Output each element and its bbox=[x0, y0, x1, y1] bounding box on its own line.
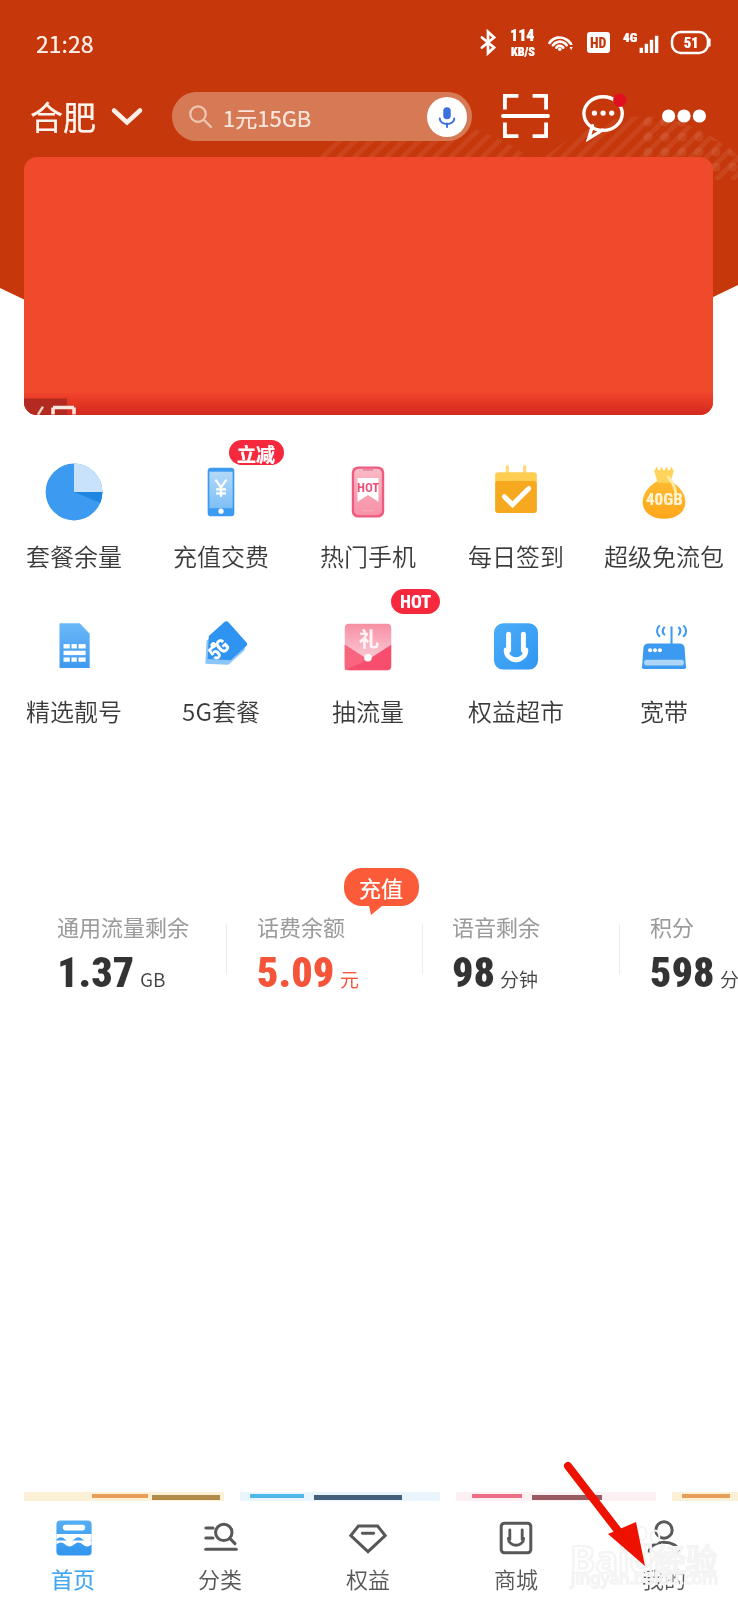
staticText: 充值 bbox=[359, 871, 404, 903]
staticText: KB/S bbox=[511, 45, 535, 59]
staticText: 分 bbox=[720, 965, 738, 993]
button[interactable]: 积分 bbox=[650, 910, 738, 997]
staticText: 套餐余量 bbox=[26, 538, 122, 573]
staticText: Baidu bbox=[570, 1532, 679, 1584]
button[interactable]: 礼 bbox=[294, 617, 442, 728]
staticText: 充值交费 bbox=[173, 538, 269, 573]
staticText: 合肥 bbox=[30, 92, 96, 140]
staticText: 宽带 bbox=[640, 693, 688, 728]
button[interactable]: 消息 bbox=[580, 91, 630, 141]
staticText: 话费余额 bbox=[257, 910, 346, 942]
button[interactable]: 语音剩余 bbox=[452, 910, 620, 997]
staticText: HOT bbox=[400, 591, 431, 612]
button[interactable]: 权益 bbox=[294, 1518, 442, 1594]
staticText: 语音剩余 bbox=[452, 910, 541, 942]
button[interactable]: 合肥 bbox=[30, 92, 140, 140]
button[interactable]: 我的 bbox=[590, 1518, 738, 1594]
staticText: 分类 bbox=[198, 1562, 243, 1594]
staticText: 598 bbox=[650, 948, 715, 997]
staticText: 商城 bbox=[494, 1562, 539, 1594]
button[interactable]: 每日签到 bbox=[442, 462, 590, 573]
staticText: 权益超市 bbox=[468, 693, 564, 728]
button[interactable]: 商城 bbox=[442, 1518, 590, 1594]
staticText: 我的 bbox=[642, 1562, 687, 1594]
staticText: 通用流量剩余 bbox=[57, 910, 190, 942]
button[interactable]: 首页 bbox=[0, 1518, 147, 1594]
button[interactable]: 通用流量剩余 bbox=[57, 910, 227, 997]
button[interactable]: HOT bbox=[294, 462, 442, 573]
staticText: 精选靓号 bbox=[26, 693, 122, 728]
staticText: 立减 bbox=[237, 440, 276, 465]
staticText: 1.37 bbox=[57, 948, 135, 997]
button[interactable]: 立减 bbox=[147, 462, 294, 573]
staticText: 5.09 bbox=[257, 948, 335, 997]
staticText: 热门手机 bbox=[320, 538, 416, 573]
staticText: 5G bbox=[203, 634, 234, 664]
staticText: 分钟 bbox=[500, 965, 539, 993]
staticText: 114 bbox=[510, 26, 535, 45]
staticText: 经验 bbox=[655, 1535, 717, 1580]
staticText: 超级免流包 bbox=[604, 538, 724, 573]
staticText: jingyan.baidu.com bbox=[571, 1566, 719, 1589]
staticText: 积分 bbox=[650, 910, 695, 942]
staticText: 40GB bbox=[646, 489, 683, 509]
button[interactable]: 宽带 bbox=[590, 617, 738, 728]
staticText: 51 bbox=[684, 35, 699, 51]
button[interactable]: 精选靓号 bbox=[0, 617, 147, 728]
button[interactable]: 1元15GB bbox=[172, 92, 472, 141]
staticText: GB bbox=[140, 965, 166, 993]
staticText: 首页 bbox=[51, 1562, 96, 1594]
staticText: 元 bbox=[340, 965, 360, 993]
button[interactable]: 充值 bbox=[344, 868, 419, 906]
button[interactable]: 更多 bbox=[652, 91, 716, 141]
button[interactable]: 套餐余量 bbox=[0, 462, 147, 573]
button[interactable]: 扫一扫 bbox=[501, 92, 549, 140]
staticText: 5G套餐 bbox=[182, 693, 260, 728]
staticText: 4G bbox=[623, 30, 638, 45]
button[interactable]: 话费余额 bbox=[257, 910, 423, 997]
staticText: 98 bbox=[452, 948, 495, 997]
staticText: 抽流量 bbox=[332, 693, 404, 728]
button[interactable]: 40GB bbox=[590, 462, 738, 573]
staticText: HOT bbox=[357, 480, 380, 495]
staticText: 礼 bbox=[359, 624, 379, 653]
button[interactable] bbox=[24, 157, 713, 415]
button[interactable]: 分类 bbox=[147, 1518, 294, 1594]
staticText: 权益 bbox=[346, 1562, 391, 1594]
staticText: 21:28 bbox=[36, 26, 94, 59]
staticText: 每日签到 bbox=[468, 538, 564, 573]
staticText: HD bbox=[590, 35, 607, 51]
button[interactable]: 5G bbox=[147, 617, 294, 728]
button[interactable]: 权益超市 bbox=[442, 617, 590, 728]
staticText: 1元15GB bbox=[223, 101, 312, 133]
